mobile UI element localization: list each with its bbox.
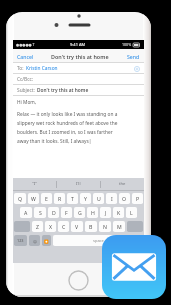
button[interactable]: Q bbox=[14, 193, 26, 204]
button[interactable]: Cc/Bcc: bbox=[13, 74, 144, 85]
staticText: Z bbox=[36, 223, 39, 230]
button[interactable]: W bbox=[28, 193, 39, 204]
button[interactable]: 123 bbox=[14, 235, 27, 246]
staticText: Q bbox=[18, 195, 23, 202]
button[interactable]: space bbox=[53, 235, 143, 246]
staticText: O bbox=[122, 195, 127, 202]
button[interactable]: R bbox=[54, 193, 65, 204]
staticText: 100% bbox=[122, 42, 132, 47]
button[interactable]: X bbox=[45, 221, 56, 232]
button[interactable]: M bbox=[113, 221, 125, 232]
button[interactable]: H bbox=[87, 207, 98, 218]
button[interactable]: Home bbox=[68, 270, 89, 291]
staticText: Cc/Bcc: bbox=[17, 76, 34, 83]
staticText: space bbox=[93, 238, 104, 243]
staticText: D bbox=[52, 209, 56, 216]
staticText: G bbox=[78, 209, 82, 216]
button[interactable]: Key bbox=[14, 221, 30, 232]
button[interactable]: O bbox=[119, 193, 130, 204]
staticText: boulders. But I zoomed in, so I was fart… bbox=[17, 129, 113, 136]
staticText: R bbox=[58, 195, 62, 202]
button[interactable]: Send bbox=[126, 52, 141, 61]
staticText: To: bbox=[17, 65, 24, 72]
button[interactable]: To: bbox=[13, 63, 144, 74]
staticText: B bbox=[89, 223, 93, 230]
button[interactable]: J bbox=[100, 207, 111, 218]
staticText: away than it looks. Still, I always| bbox=[17, 138, 92, 145]
staticText: P bbox=[136, 195, 140, 202]
button[interactable]: G bbox=[74, 207, 85, 218]
button[interactable]: the bbox=[101, 178, 144, 190]
button[interactable]: Subject: bbox=[13, 85, 144, 96]
staticText: K bbox=[117, 209, 121, 216]
staticText: W bbox=[31, 195, 36, 202]
button[interactable]: I bbox=[106, 193, 117, 204]
staticText: "I" bbox=[32, 181, 37, 187]
staticText: 9:41 AM bbox=[70, 42, 86, 47]
staticText: slippery wet rock hundreds of feet above… bbox=[17, 120, 118, 127]
staticText: S bbox=[39, 209, 42, 216]
button[interactable]: S bbox=[34, 207, 46, 218]
button[interactable]: ☺ bbox=[29, 235, 40, 246]
button[interactable]: Mail bbox=[102, 235, 166, 299]
button[interactable]: Cancel bbox=[16, 52, 35, 61]
staticText: Don't try this at home bbox=[51, 53, 109, 60]
button[interactable]: Key bbox=[127, 221, 143, 232]
button[interactable]: A bbox=[20, 207, 32, 218]
staticText: A bbox=[24, 209, 28, 216]
button[interactable]: V bbox=[71, 221, 83, 232]
staticText: Y bbox=[84, 195, 87, 202]
staticText: ●●●●● T bbox=[16, 42, 35, 47]
staticText: 123 bbox=[17, 238, 24, 243]
staticText: the bbox=[119, 181, 126, 187]
staticText: M bbox=[117, 223, 122, 230]
staticText: Subject: bbox=[17, 87, 35, 94]
staticText: V bbox=[75, 223, 79, 230]
button[interactable]: D bbox=[48, 207, 59, 218]
button[interactable]: U bbox=[93, 193, 104, 204]
staticText: Relax — it only looks like I was standin… bbox=[17, 111, 118, 118]
button[interactable]: Z bbox=[32, 221, 43, 232]
button[interactable]: E bbox=[41, 193, 52, 204]
staticText: C bbox=[62, 223, 66, 230]
button[interactable]: Y bbox=[80, 193, 91, 204]
staticText: T bbox=[71, 195, 74, 202]
staticText: I bbox=[111, 195, 113, 202]
button[interactable]: "I" bbox=[13, 178, 56, 190]
button[interactable]: T bbox=[67, 193, 78, 204]
staticText: ⏺ bbox=[44, 239, 49, 243]
staticText: H bbox=[91, 209, 95, 216]
staticText: I'll bbox=[76, 181, 81, 187]
staticText: Kristin Carson bbox=[26, 65, 58, 72]
staticText: ☺ bbox=[33, 239, 37, 243]
staticText: L bbox=[130, 209, 133, 216]
button[interactable]: B bbox=[85, 221, 97, 232]
staticText: E bbox=[45, 195, 48, 202]
staticText: U bbox=[97, 195, 101, 202]
button[interactable]: K bbox=[113, 207, 124, 218]
button[interactable]: I'll bbox=[57, 178, 100, 190]
button[interactable]: N bbox=[99, 221, 111, 232]
staticText: Hi Mom, bbox=[17, 99, 37, 106]
button[interactable]: F bbox=[61, 207, 72, 218]
staticText: Don't try this at home bbox=[37, 87, 89, 94]
button[interactable]: L bbox=[126, 207, 137, 218]
staticText: Cancel bbox=[17, 53, 34, 60]
staticText: X bbox=[49, 223, 53, 230]
staticText: J bbox=[105, 209, 107, 216]
button[interactable]: P bbox=[132, 193, 143, 204]
button[interactable]: C bbox=[58, 221, 69, 232]
staticText: Send bbox=[127, 53, 140, 60]
staticText: N bbox=[103, 223, 107, 230]
staticText: F bbox=[65, 209, 68, 216]
button[interactable]: ⏺ bbox=[42, 235, 51, 246]
